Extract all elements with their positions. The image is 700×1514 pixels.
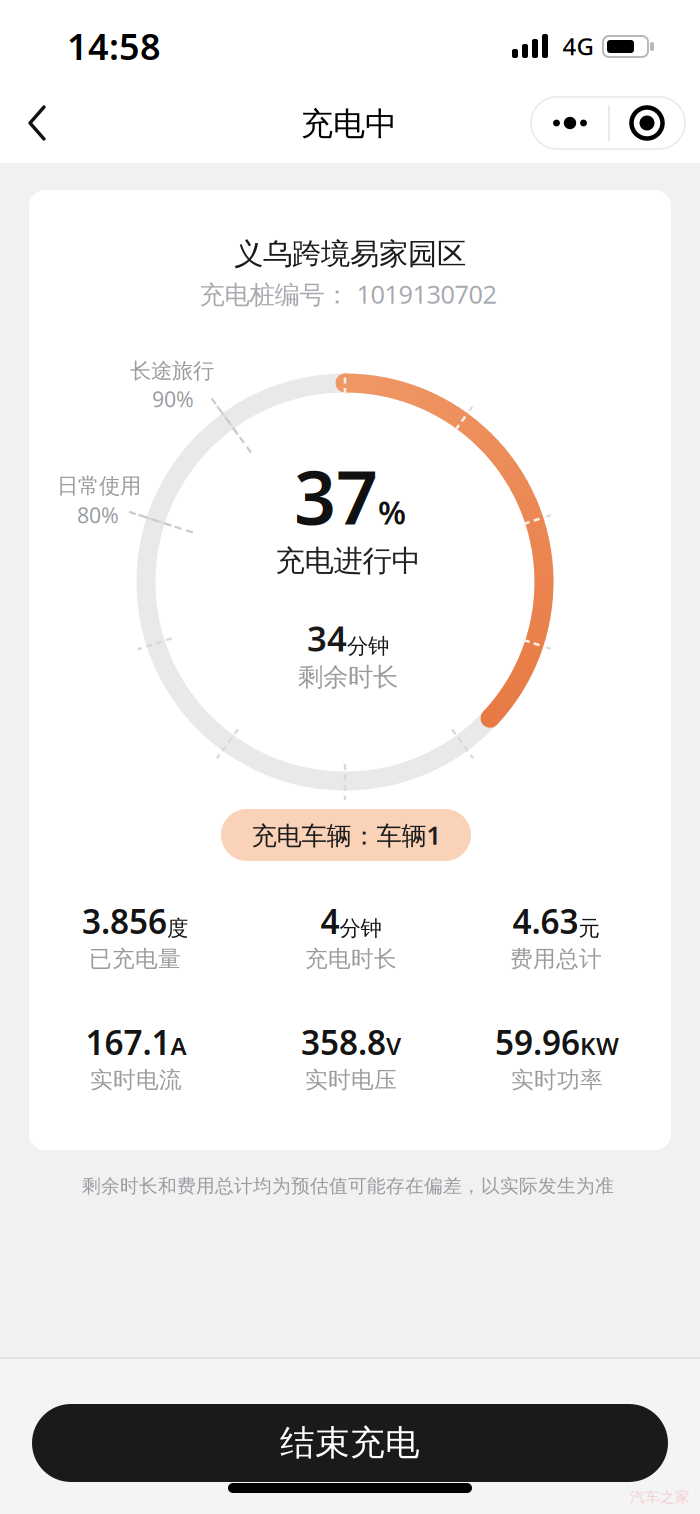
staticText: 充电桩编号： 1019130702 bbox=[199, 277, 496, 311]
staticText: 34分钟 bbox=[307, 615, 389, 661]
staticText: 剩余时长 bbox=[298, 661, 398, 692]
button[interactable]: 结束充电 bbox=[32, 1404, 668, 1482]
staticText: 汽车之家 bbox=[630, 1488, 690, 1506]
staticText: 4G bbox=[562, 30, 593, 62]
staticText: 358.8V bbox=[301, 1020, 401, 1064]
staticText: 费用总计 bbox=[510, 945, 602, 973]
staticText: 4分钟 bbox=[320, 899, 381, 943]
staticText: 59.96KW bbox=[495, 1020, 619, 1064]
staticText: 实时功率 bbox=[511, 1066, 603, 1094]
staticText: 充电进行中 bbox=[275, 543, 420, 579]
staticText: 4.63元 bbox=[512, 899, 599, 943]
staticText: 已充电量 bbox=[89, 945, 181, 973]
staticText: 剩余时长和费用总计均为预估值可能存在偏差，以实际发生为准 bbox=[82, 1174, 614, 1197]
staticText: 167.1A bbox=[85, 1020, 186, 1064]
staticText: 实时电压 bbox=[305, 1066, 397, 1094]
button[interactable]: 充电车辆：车辆1 bbox=[221, 809, 471, 861]
staticText: 充电车辆：车辆1 bbox=[251, 818, 440, 852]
staticText: 充电中 bbox=[301, 104, 397, 144]
staticText: 长途旅行 bbox=[130, 358, 214, 384]
staticText: 结束充电 bbox=[280, 1422, 420, 1464]
button[interactable] bbox=[609, 97, 685, 149]
staticText: 80% bbox=[77, 501, 119, 529]
staticText: 90% bbox=[152, 385, 194, 413]
staticText: 日常使用 bbox=[57, 473, 141, 499]
button[interactable] bbox=[7, 93, 67, 153]
staticText: 实时电流 bbox=[90, 1066, 182, 1094]
staticText: 37% bbox=[294, 447, 406, 545]
staticText: 充电时长 bbox=[305, 945, 397, 973]
staticText: 3.856度 bbox=[82, 899, 188, 943]
staticText: 14:58 bbox=[67, 22, 161, 70]
staticText: 义乌跨境易家园区 bbox=[234, 236, 466, 272]
button[interactable] bbox=[532, 97, 608, 149]
